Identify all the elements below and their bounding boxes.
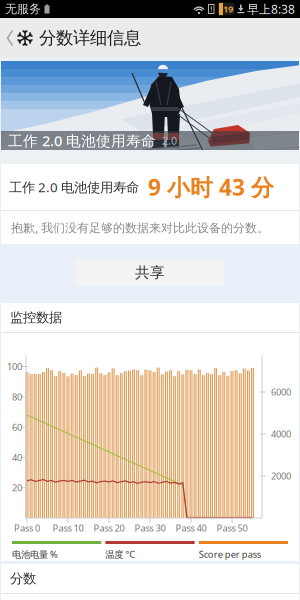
staticText: 2.0: [162, 133, 177, 148]
staticText: 80: [12, 391, 22, 403]
staticText: 监控数据: [10, 309, 62, 326]
staticText: 电池电量 %: [12, 548, 58, 560]
staticText: 6000: [271, 386, 291, 398]
staticText: 20: [12, 481, 22, 494]
staticText: 温度 °C: [105, 548, 135, 560]
staticText: 19: [223, 3, 233, 15]
staticText: Pass 40: [175, 522, 206, 534]
staticText: 工作 2.0 电池使用寿命: [8, 131, 156, 150]
staticText: 4000: [271, 428, 291, 440]
staticText: 60: [12, 421, 22, 433]
staticText: Pass 10: [52, 522, 83, 534]
staticText: 分数详细信息: [39, 27, 141, 49]
staticText: 工作 2.0 电池使用寿命: [9, 178, 139, 196]
staticText: 40: [12, 451, 22, 464]
staticText: 早上8:38: [247, 1, 295, 17]
staticText: 共享: [135, 263, 165, 281]
button[interactable]: Back: [3, 18, 17, 58]
staticText: Score per pass: [199, 548, 261, 560]
staticText: Pass 50: [216, 522, 247, 534]
button[interactable]: 共享: [75, 259, 224, 286]
staticText: 分数: [10, 570, 36, 587]
staticText: Pass 20: [93, 522, 124, 534]
staticText: 9 小时 43 分: [148, 172, 274, 202]
staticText: Pass 30: [134, 522, 165, 534]
staticText: 2000: [271, 470, 291, 482]
staticText: Pass 0: [14, 522, 40, 534]
staticText: 100: [7, 360, 22, 373]
staticText: 抱歉, 我们没有足够的数据来对比此设备的分数。: [11, 219, 269, 235]
staticText: 无服务: [5, 2, 41, 16]
